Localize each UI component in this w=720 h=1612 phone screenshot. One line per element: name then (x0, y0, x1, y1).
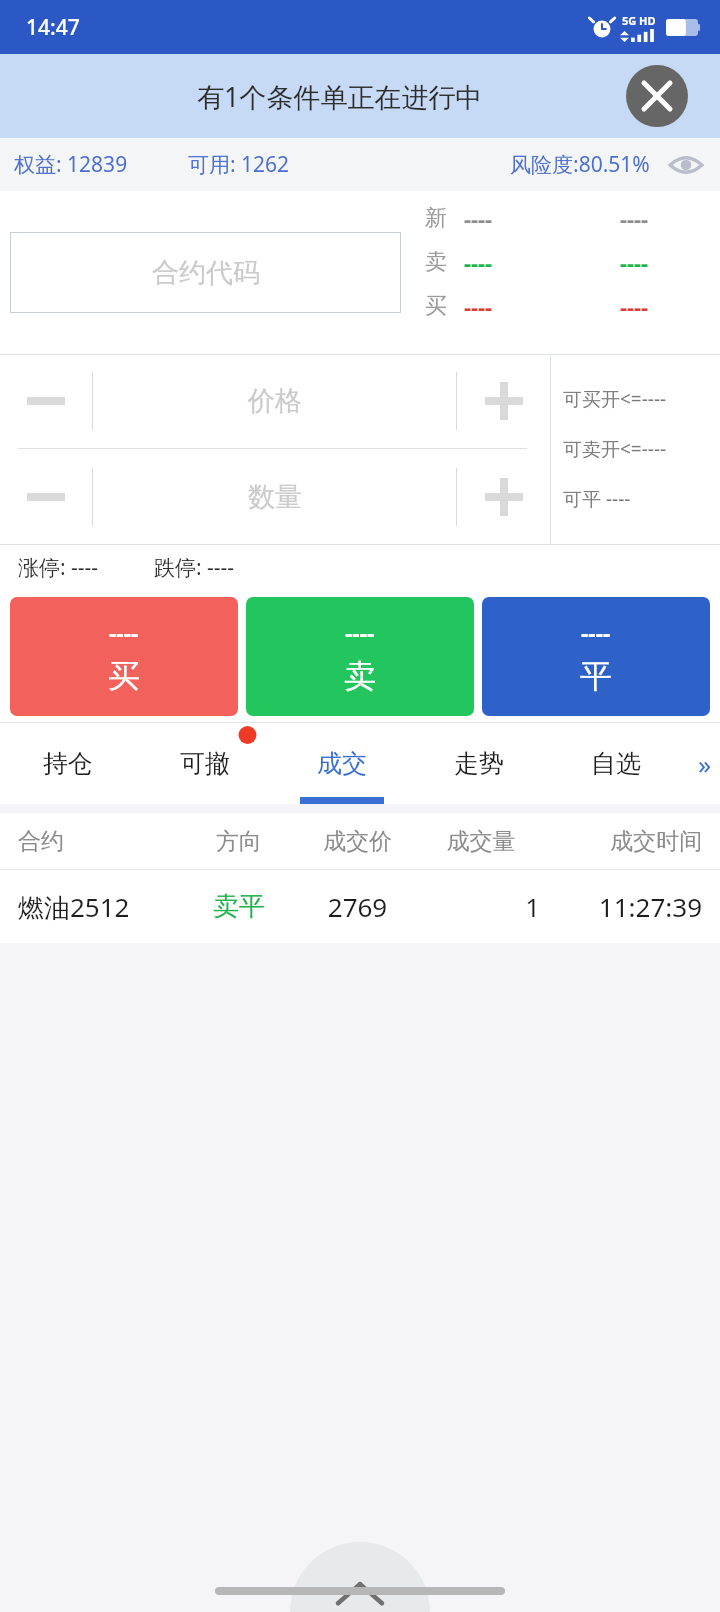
button[interactable]: 持仓 (0, 722, 136, 804)
staticText: 买 (108, 656, 140, 696)
staticText: ---- (620, 203, 649, 233)
staticText: 可撤 (180, 748, 230, 779)
staticText: 走势 (454, 748, 504, 779)
button[interactable]: 展开 (290, 1542, 430, 1612)
staticText: ---- (581, 617, 611, 648)
staticText: 燃油2512 (18, 889, 185, 925)
staticText: 买 (425, 292, 447, 320)
button[interactable]: 减少 (0, 354, 92, 448)
button[interactable]: 燃油2512 (18, 870, 702, 943)
staticText: 合约代码 (152, 256, 260, 290)
button[interactable]: 走势 (410, 722, 547, 804)
staticText: ---- (620, 291, 649, 321)
staticText: 合约 (18, 827, 185, 856)
staticText: 平 (580, 656, 612, 696)
staticText: 可买开<=---- (563, 386, 667, 412)
button[interactable]: ---- (10, 597, 238, 716)
staticText: 可平 ---- (563, 486, 631, 512)
staticText: » (698, 746, 712, 781)
button[interactable]: 价格 (93, 354, 456, 448)
staticText: 新 (425, 204, 447, 232)
button[interactable]: 合约代码 (10, 232, 401, 313)
staticText: 11:27:39 (540, 889, 702, 924)
button[interactable]: ---- (246, 597, 474, 716)
button[interactable]: 增加 (457, 354, 550, 448)
staticText: 5G HD (622, 13, 656, 28)
staticText: ---- (620, 247, 649, 277)
staticText: 卖 (425, 248, 447, 276)
staticText: 价格 (248, 384, 302, 418)
staticText: 成交时间 (540, 827, 702, 856)
staticText: 卖平 (185, 890, 293, 923)
staticText: 2769 (293, 889, 422, 924)
staticText: 14:47 (26, 13, 80, 42)
staticText: 成交价 (293, 827, 422, 856)
staticText: 成交量 (422, 827, 540, 856)
staticText: 可用: 1262 (188, 150, 290, 179)
staticText: 成交 (317, 748, 367, 779)
staticText: 1 (422, 889, 540, 924)
staticText: 风险度:80.51% (510, 150, 650, 179)
staticText: ---- (464, 291, 542, 321)
button[interactable]: 数量 (93, 449, 456, 544)
button[interactable]: 增加 (457, 449, 550, 544)
staticText: 自选 (591, 748, 641, 779)
staticText: 卖 (344, 656, 376, 696)
button[interactable]: 显示隐藏资金 (666, 145, 706, 185)
button[interactable]: 减少 (0, 449, 92, 544)
staticText: 权益: 12839 (14, 150, 128, 179)
staticText: 数量 (248, 480, 302, 514)
button[interactable]: 关闭 (626, 65, 688, 127)
staticText: 持仓 (43, 748, 93, 779)
button[interactable]: 成交 (273, 722, 410, 804)
staticText: ---- (464, 203, 542, 233)
staticText: 可卖开<=---- (563, 436, 667, 462)
staticText: ---- (464, 247, 542, 277)
button[interactable]: 自选 (547, 722, 684, 804)
staticText: 涨停: ---- (18, 553, 99, 582)
staticText: 跌停: ---- (154, 553, 235, 582)
button[interactable]: ---- (482, 597, 710, 716)
staticText: ---- (109, 617, 139, 648)
staticText: ---- (345, 617, 375, 648)
staticText: 方向 (185, 827, 293, 856)
button[interactable]: 可撤 (136, 722, 273, 804)
staticText: 有1个条件单正在进行中 (197, 78, 483, 115)
